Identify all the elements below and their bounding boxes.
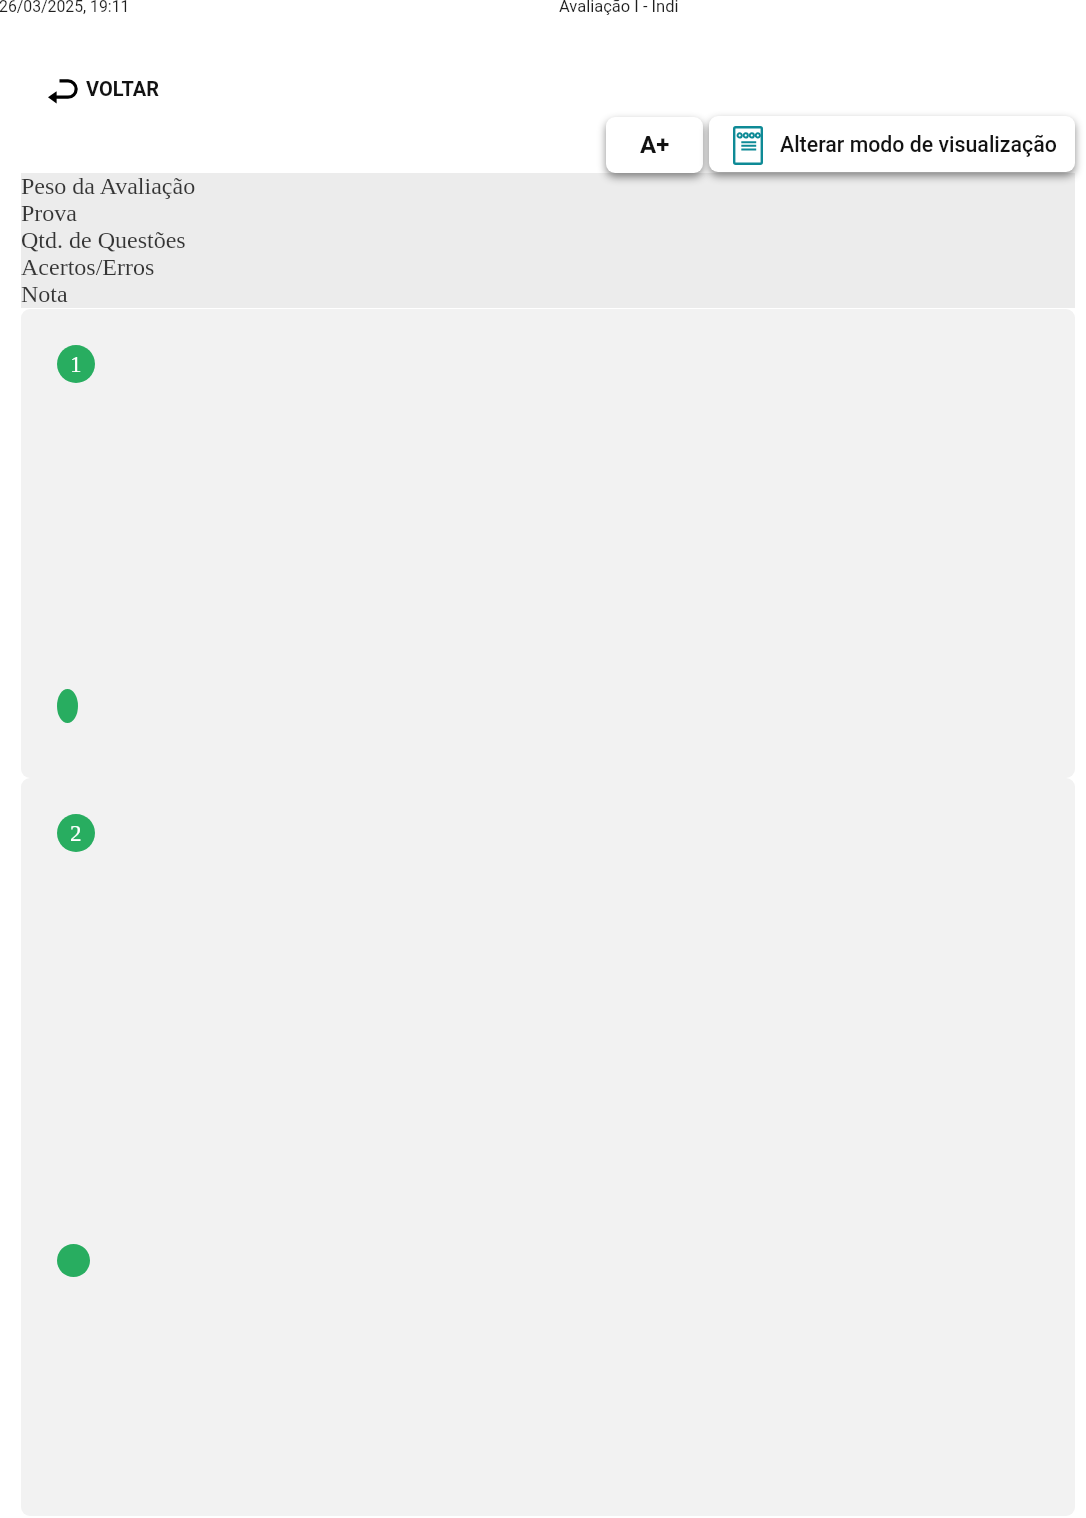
button[interactable]: A+ — [606, 117, 703, 173]
staticText: Alterar modo de visualização — [780, 132, 1057, 157]
button[interactable]: 1 — [21, 309, 1075, 778]
button[interactable]: Voltar — [44, 74, 166, 106]
staticText: Peso da Avaliação Prova Qtd. de Questões… — [21, 173, 196, 308]
staticText: VOLTAR — [86, 77, 160, 100]
staticText: 26/03/2025, 19:11 — [0, 0, 130, 16]
staticText: A+ — [640, 131, 670, 159]
button[interactable]: Alterar modo de visualização — [709, 116, 1075, 172]
staticText: 1 — [70, 352, 82, 377]
staticText: Avaliação I - Indi — [559, 0, 679, 16]
other: Voltar — [48, 79, 82, 107]
button[interactable]: 2 — [21, 778, 1075, 1516]
staticText: 2 — [70, 821, 82, 846]
